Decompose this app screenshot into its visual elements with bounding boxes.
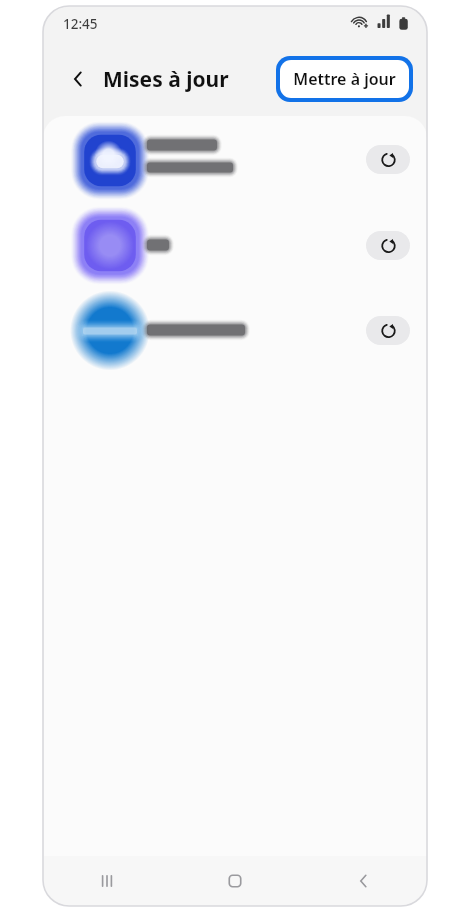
button[interactable]: Retour xyxy=(61,62,95,96)
button[interactable]: Retour xyxy=(299,856,427,906)
button[interactable]: Actualiser xyxy=(43,288,427,373)
staticText: Mises à jour xyxy=(103,65,229,94)
button[interactable]: Actualiser xyxy=(366,145,410,174)
staticText: 12:45 xyxy=(63,15,98,33)
button[interactable]: Récents xyxy=(43,856,171,906)
button[interactable]: Actualiser xyxy=(43,116,427,203)
button[interactable]: Actualiser xyxy=(43,203,427,288)
button[interactable]: Actualiser xyxy=(366,316,410,345)
button[interactable]: Accueil xyxy=(171,856,299,906)
button[interactable]: Actualiser xyxy=(366,231,410,260)
button[interactable]: Mettre à jour xyxy=(276,56,413,102)
staticText: Mettre à jour xyxy=(293,68,396,90)
